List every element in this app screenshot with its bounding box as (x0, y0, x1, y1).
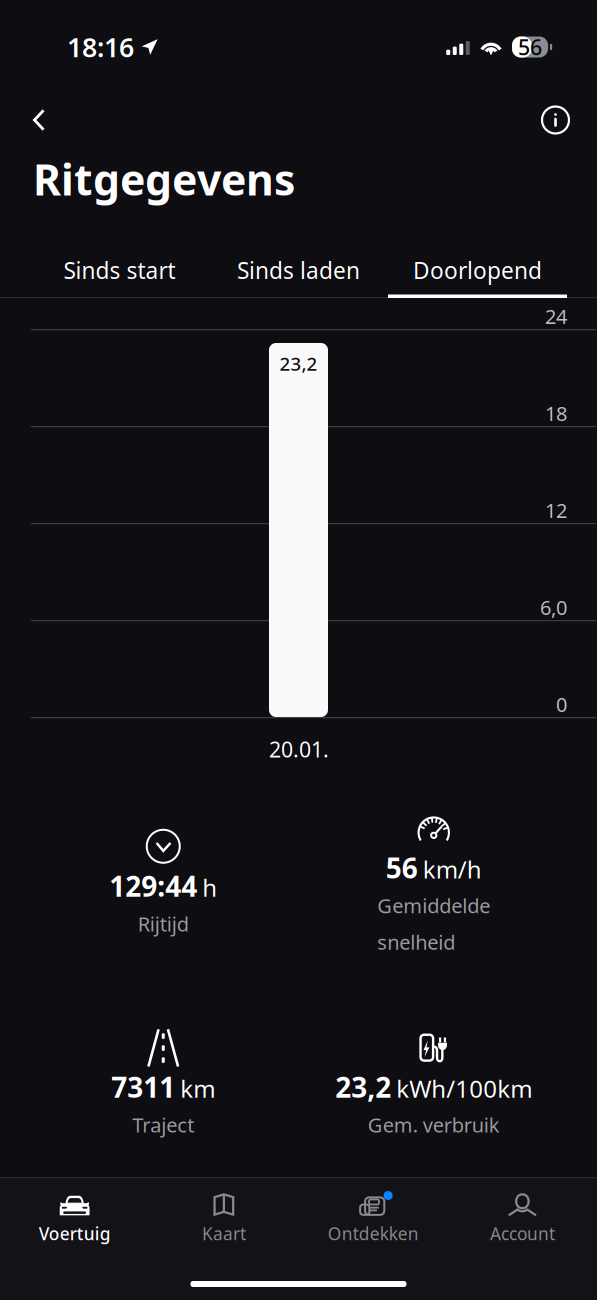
staticText: Traject (132, 1111, 194, 1138)
staticText: Gem. verbruik (368, 1111, 500, 1138)
staticText: 56 (518, 33, 542, 61)
button[interactable]: Sinds laden (209, 212, 388, 298)
staticText: Ritgegevens (33, 151, 295, 207)
staticText: 12 (545, 497, 567, 524)
staticText: km (180, 1072, 215, 1104)
button[interactable]: Account (448, 1193, 597, 1245)
staticText: 23,2 (279, 351, 317, 376)
button[interactable]: Kaart (149, 1193, 298, 1245)
staticText: 7311 (111, 1068, 175, 1105)
staticText: 20.01. (269, 735, 329, 763)
staticText: Ontdekken (328, 1222, 419, 1245)
button[interactable]: Information (520, 94, 597, 145)
staticText: Sinds start (63, 255, 175, 285)
staticText: kWh/100km (396, 1072, 532, 1104)
staticText: 18:16 (67, 29, 134, 65)
staticText: 0 (556, 691, 567, 718)
staticText: Account (490, 1222, 555, 1245)
button[interactable]: Back (0, 95, 67, 145)
button[interactable]: Voertuig (0, 1193, 149, 1245)
staticText: km/h (423, 853, 482, 885)
button[interactable]: Sinds start (30, 212, 209, 298)
staticText: Doorlopend (413, 255, 542, 285)
staticText: 6,0 (540, 594, 567, 621)
staticText: Sinds laden (237, 255, 360, 285)
staticText: 56 (386, 849, 418, 886)
staticText: 24 (545, 303, 567, 330)
staticText: h (202, 871, 217, 903)
staticText: 23,2 (335, 1068, 391, 1105)
staticText: Voertuig (39, 1222, 111, 1245)
staticText: 18 (545, 400, 567, 427)
staticText: Rijtijd (138, 910, 189, 937)
button[interactable]: Doorlopend (388, 212, 567, 298)
staticText: 129:44 (109, 867, 197, 904)
button[interactable]: Ontdekken (298, 1193, 448, 1245)
staticText: Gemiddelde snelheid (377, 892, 490, 955)
staticText: Kaart (202, 1222, 246, 1245)
